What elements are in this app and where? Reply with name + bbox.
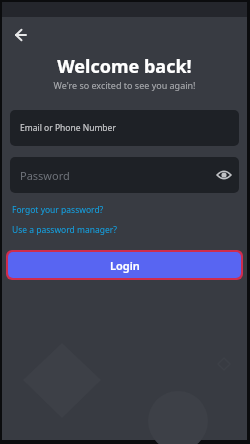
staticText: Email or Phone Number [20, 122, 116, 134]
staticText: We're so excited to see you again! [2, 79, 247, 91]
staticText: Password [20, 168, 70, 183]
button[interactable]: Forgot your password? [12, 204, 104, 216]
button[interactable] [14, 28, 28, 42]
staticText: Login [110, 258, 140, 273]
staticText: Welcome back! [2, 54, 247, 79]
button[interactable]: Email or Phone Number [10, 110, 239, 146]
button[interactable]: Password [10, 157, 239, 193]
button[interactable]: Login [6, 250, 243, 280]
button[interactable]: Use a password manager? [12, 224, 117, 236]
